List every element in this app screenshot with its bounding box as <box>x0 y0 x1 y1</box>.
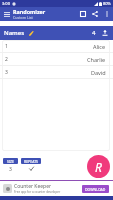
staticText: R <box>95 159 102 175</box>
staticText: REPEATS <box>24 159 39 164</box>
button[interactable]: Randomize <box>87 155 110 178</box>
staticText: Alice <box>93 43 106 50</box>
staticText: Names <box>4 29 25 37</box>
staticText: 3 <box>5 69 8 76</box>
staticText: Free app for a counter developer <box>14 190 61 194</box>
button[interactable]: Import list <box>100 28 110 38</box>
button[interactable]: 1 <box>0 40 113 52</box>
staticText: Custom List <box>13 15 33 20</box>
staticText: DOWNLOAD <box>85 187 106 192</box>
button[interactable]: DOWNLOAD <box>82 185 109 193</box>
button[interactable]: Share <box>89 7 101 21</box>
button[interactable]: More options <box>101 7 113 21</box>
button[interactable]: Edit list name <box>28 30 34 36</box>
staticText: 80% <box>103 1 111 6</box>
staticText: SIZE <box>7 159 15 164</box>
button[interactable]: Save list <box>77 7 89 21</box>
staticText: Randomizer <box>13 8 46 15</box>
button[interactable]: 3 <box>0 66 113 78</box>
staticText: 3 <box>9 166 12 173</box>
button[interactable]: REPEATS <box>21 158 41 164</box>
staticText: 1 <box>5 43 8 50</box>
staticText: 3:00 <box>2 1 10 6</box>
button[interactable]: SIZE <box>3 158 18 164</box>
staticText: 2 <box>5 56 8 63</box>
staticText: Counter Keeper <box>14 183 52 190</box>
staticText: 4 <box>92 29 96 37</box>
button[interactable]: Menu <box>0 7 13 21</box>
staticText: David <box>91 69 106 76</box>
button[interactable]: 2 <box>0 53 113 65</box>
staticText: Charlie <box>87 56 106 63</box>
